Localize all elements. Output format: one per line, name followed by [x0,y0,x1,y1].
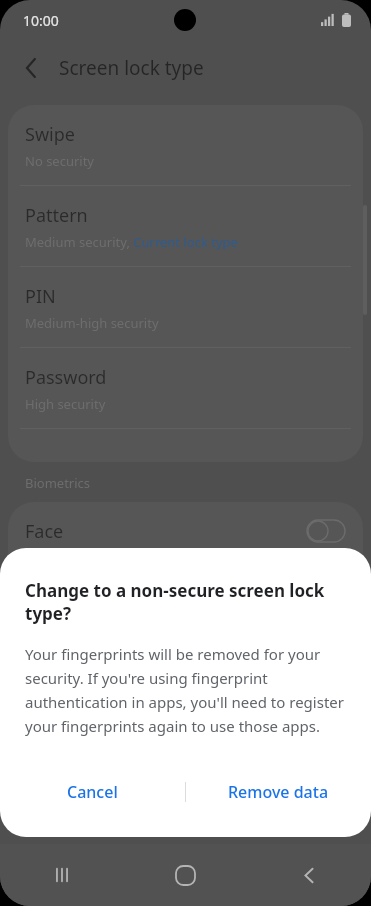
button[interactable]: Cancel [0,761,185,823]
button[interactable]: Password [8,348,363,429]
button[interactable]: Home [123,844,247,906]
staticText: Face [25,519,64,544]
staticText: 10:00 [23,11,59,30]
staticText: Remove data [228,781,329,803]
staticText: PIN [25,284,56,309]
staticText: Swipe [25,122,75,147]
staticText: Medium security, Current lock type [25,233,238,251]
staticText: Pattern [25,203,88,228]
button[interactable]: Face [8,502,363,560]
staticText: Password [25,365,107,390]
button[interactable]: Swipe [8,105,363,186]
button[interactable]: Back [12,48,52,88]
staticText: Biometrics [25,474,91,492]
button[interactable]: Back [247,844,371,906]
button[interactable]: Remove data [186,761,371,823]
staticText: No security [25,152,95,170]
staticText: High security [25,395,106,413]
button[interactable]: Pattern [8,186,363,267]
button[interactable]: Recent apps [0,844,123,906]
staticText: Cancel [67,781,118,803]
staticText: Your fingerprints will be removed for yo… [25,644,349,736]
staticText: Medium-high security [25,314,159,332]
button[interactable]: PIN [8,267,363,348]
staticText: Change to a non-secure screen lock type? [25,579,349,625]
staticText: Screen lock type [59,55,204,81]
